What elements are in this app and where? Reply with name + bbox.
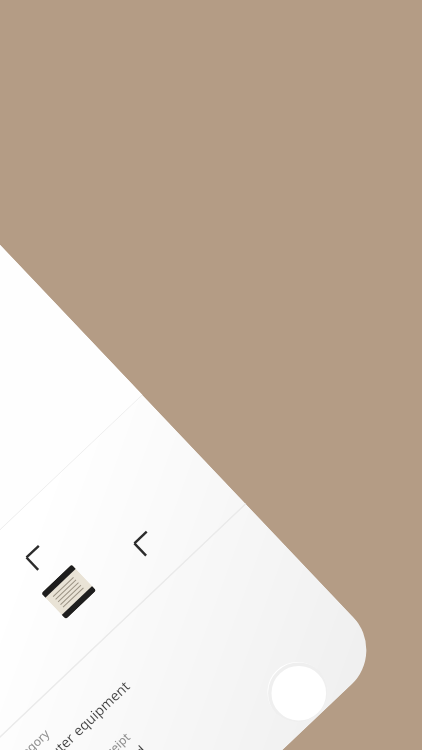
staticText: Category (4, 725, 53, 750)
button[interactable]: Category (0, 511, 293, 750)
button[interactable]: Transaction receipt (5, 553, 332, 750)
staticText: Computer equipment (17, 676, 134, 750)
staticText: Receipt attached (57, 741, 150, 750)
staticText: Transaction receipt (44, 728, 133, 750)
button[interactable]: Transaction owner (45, 595, 372, 750)
button[interactable]: Add (255, 649, 340, 734)
button[interactable]: Receipt photo (41, 564, 96, 619)
button[interactable]: Transaction (0, 177, 143, 668)
